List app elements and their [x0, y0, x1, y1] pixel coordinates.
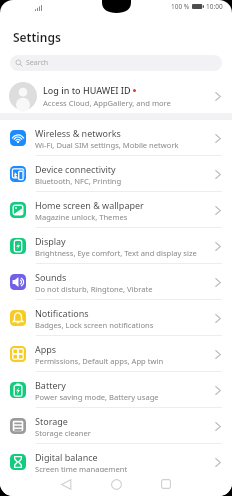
- staticText: Apps: [35, 343, 57, 355]
- staticText: Digital balance: [35, 451, 98, 463]
- staticText: Magazine unlock, Themes: [35, 212, 128, 222]
- button[interactable]: Home screen & wallpaper: [0, 192, 232, 228]
- staticText: Notifications: [35, 307, 89, 319]
- button[interactable]: Display: [0, 228, 232, 264]
- staticText: Access Cloud, AppGallery, and more: [43, 98, 171, 108]
- staticText: Wireless & networks: [35, 127, 121, 139]
- staticText: Storage cleaner: [35, 428, 91, 438]
- staticText: Do not disturb, Ringtone, Vibrate: [35, 284, 153, 294]
- staticText: Search: [26, 58, 49, 68]
- button[interactable]: Storage: [0, 408, 232, 444]
- button[interactable]: Log in to HUAWEI ID: [0, 71, 232, 113]
- button[interactable]: Digital balance: [0, 444, 232, 480]
- staticText: Log in to HUAWEI ID: [43, 84, 131, 96]
- button[interactable]: Apps: [0, 336, 232, 372]
- staticText: Brightness, Eye comfort, Text and displa…: [35, 248, 197, 258]
- staticText: Settings: [13, 29, 61, 45]
- staticText: Screen time management: [35, 464, 128, 474]
- staticText: Battery: [35, 379, 66, 391]
- button[interactable]: Battery: [0, 372, 232, 408]
- button[interactable]: Search: [10, 55, 222, 71]
- staticText: Display: [35, 235, 66, 247]
- button[interactable]: Wireless & networks: [0, 120, 232, 156]
- staticText: Power saving mode, Battery usage: [35, 392, 159, 402]
- staticText: Permissions, Default apps, App twin: [35, 356, 164, 366]
- button[interactable]: Back: [46, 472, 86, 496]
- staticText: Home screen & wallpaper: [35, 199, 144, 211]
- button[interactable]: Device connectivity: [0, 156, 232, 192]
- button[interactable]: Home: [96, 472, 136, 496]
- staticText: 100 %: [171, 2, 190, 11]
- staticText: Storage: [35, 415, 68, 427]
- staticText: 10:00: [206, 2, 223, 11]
- staticText: Device connectivity: [35, 163, 116, 175]
- staticText: Bluetooth, NFC, Printing: [35, 176, 122, 186]
- button[interactable]: Notifications: [0, 300, 232, 336]
- button[interactable]: Sounds: [0, 264, 232, 300]
- staticText: Wi-Fi, Dual SIM settings, Mobile network: [35, 140, 179, 150]
- staticText: Badges, Lock screen notifications: [35, 320, 154, 330]
- staticText: Sounds: [35, 271, 67, 283]
- button[interactable]: Recents: [146, 472, 186, 496]
